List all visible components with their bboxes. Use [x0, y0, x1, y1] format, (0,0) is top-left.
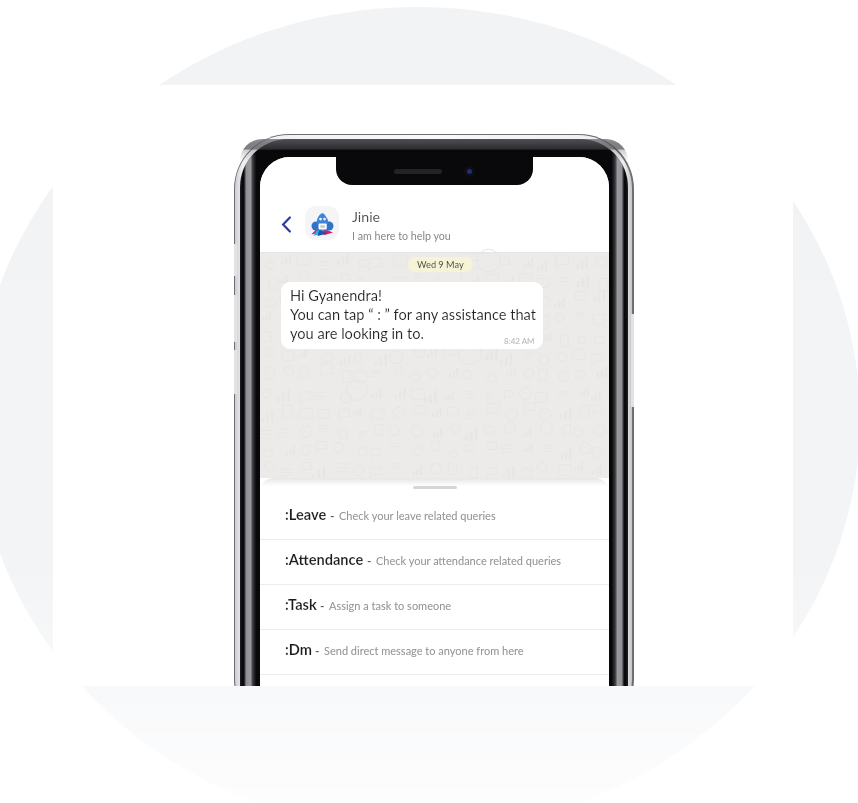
staticText: -: [315, 643, 320, 657]
staticText: 8:42 AM: [504, 336, 535, 346]
staticText: :Attendance: [285, 551, 364, 569]
button[interactable]: :Leave: [260, 495, 609, 540]
staticText: -: [330, 508, 335, 522]
staticText: Check your attendance related queries: [376, 554, 562, 567]
staticText: :Leave: [285, 506, 327, 524]
button[interactable]: :Attendance: [260, 540, 609, 585]
staticText: :Dm: [285, 641, 312, 659]
button[interactable]: :Task: [260, 585, 609, 630]
staticText: Send direct message to anyone from here: [324, 644, 524, 657]
staticText: Assign a task to someone: [329, 599, 452, 612]
button[interactable]: :Dm: [260, 630, 609, 675]
staticText: Jinie: [352, 208, 381, 225]
staticText: :Task: [285, 596, 317, 614]
staticText: -: [367, 553, 372, 567]
staticText: I am here to help you: [352, 229, 451, 242]
staticText: Check your leave related queries: [339, 509, 496, 522]
staticText: -: [320, 598, 325, 612]
button[interactable]: Back: [272, 210, 300, 238]
staticText: Hi Gyanendra! You can tap “ : ” for any …: [290, 287, 536, 342]
staticText: Wed 9 May: [417, 259, 464, 270]
